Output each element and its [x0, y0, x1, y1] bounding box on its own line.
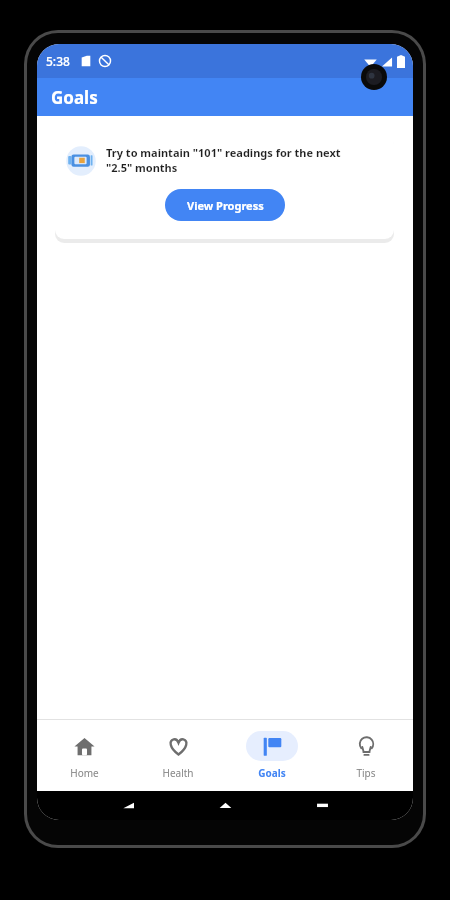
staticText: Tips [356, 766, 376, 780]
other: Back [121, 799, 134, 812]
other: Goals [262, 736, 283, 757]
staticText: Home [70, 766, 99, 780]
staticText: Try to maintain "101" readings for the n… [106, 145, 341, 175]
staticText: Goals [51, 86, 98, 109]
staticText: Health [162, 766, 194, 780]
staticText: View Progress [187, 198, 264, 213]
staticText: Goals [258, 766, 286, 780]
button[interactable]: Home [43, 720, 125, 791]
button[interactable]: View Progress [165, 189, 285, 221]
button[interactable]: Goals [231, 720, 313, 791]
other: Recent apps [316, 799, 329, 812]
button[interactable]: Tips [325, 720, 407, 791]
button[interactable]: Health [137, 720, 219, 791]
other: Tips [356, 736, 377, 757]
staticText: 5:38 [46, 53, 70, 69]
other: Health [168, 736, 189, 757]
other: Home [219, 799, 232, 812]
button[interactable]: Try to maintain "101" readings for the n… [55, 135, 394, 239]
other: Home [74, 736, 95, 757]
